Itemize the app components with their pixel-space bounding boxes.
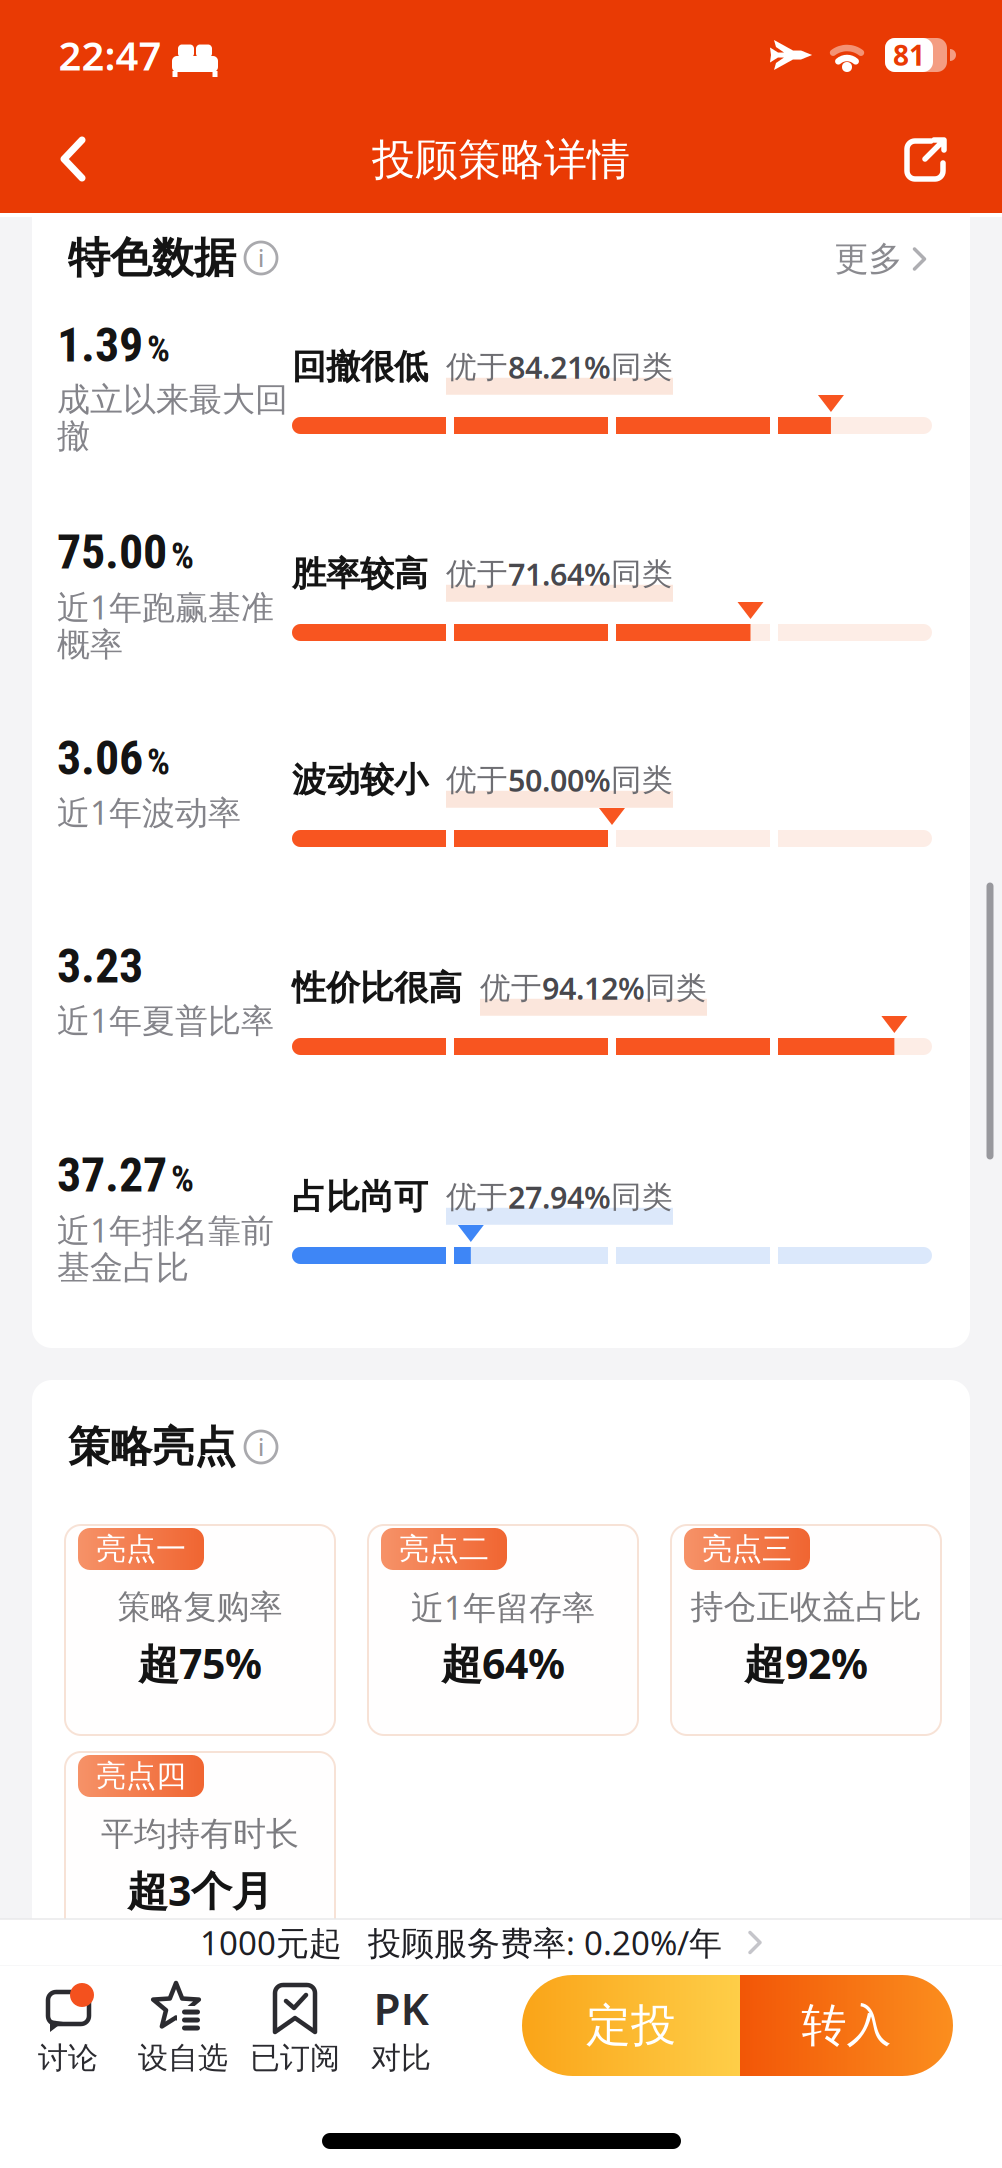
staticText: 71.64% <box>508 553 611 595</box>
staticText: 超3个月 <box>127 1862 273 1918</box>
staticText: 同类 <box>611 555 673 593</box>
staticText: 对比 <box>371 2039 431 2077</box>
staticText: 近1年排名靠前 基金占比 <box>57 1210 274 1286</box>
staticText: 更多 <box>834 238 902 280</box>
button[interactable]: 1000元起 <box>0 1919 1002 1966</box>
staticText: % <box>171 535 194 577</box>
staticText: % <box>147 328 170 370</box>
button[interactable]: PK <box>353 1982 449 2074</box>
staticText: 37.27 <box>57 1147 167 1203</box>
staticText: 近1年波动率 <box>57 792 241 832</box>
staticText: 策略亮点 <box>68 1420 236 1473</box>
staticText: 持仓正收益占比 <box>690 1586 921 1628</box>
staticText: 超64% <box>441 1635 565 1691</box>
staticText: i <box>258 1431 264 1463</box>
staticText: 22:47 <box>58 28 161 82</box>
staticText: 优于 <box>446 1178 508 1216</box>
button[interactable]: 已订阅 <box>247 1982 343 2074</box>
button[interactable]: 转入 <box>740 1975 953 2076</box>
staticText: PK <box>373 1978 428 2038</box>
staticText: 特色数据 <box>68 231 236 284</box>
staticText: 近1年留存率 <box>411 1584 595 1629</box>
button[interactable]: 更多 <box>834 238 927 280</box>
staticText: 优于 <box>446 555 508 593</box>
staticText: 策略复购率 <box>117 1586 282 1628</box>
staticText: 亮点四 <box>96 1757 186 1795</box>
staticText: 84.21% <box>508 346 611 388</box>
staticText: 81 <box>893 36 925 74</box>
staticText: 近1年跑赢基准 概率 <box>57 587 274 663</box>
staticText: 1.39 <box>57 317 143 373</box>
staticText: 3.23 <box>57 938 143 994</box>
staticText: 同类 <box>611 348 673 386</box>
staticText: 同类 <box>611 1178 673 1216</box>
staticText: 94.12% <box>542 967 645 1009</box>
staticText: 优于 <box>480 969 542 1007</box>
button[interactable]: 设自选 <box>135 1982 231 2074</box>
button[interactable]: Back <box>58 135 92 183</box>
staticText: 回撤很低 <box>292 346 428 388</box>
staticText: 超92% <box>744 1635 868 1691</box>
staticText: 近1年夏普比率 <box>57 1000 274 1040</box>
staticText: % <box>147 741 170 783</box>
staticText: 同类 <box>645 969 707 1007</box>
staticText: 成立以来最大回 撤 <box>57 381 288 455</box>
staticText: 占比尚可 <box>292 1176 428 1218</box>
staticText: % <box>171 1158 194 1200</box>
staticText: 平均持有时长 <box>101 1813 299 1855</box>
staticText: 已订阅 <box>250 2039 340 2077</box>
staticText: 定投 <box>586 1997 676 2054</box>
staticText: 亮点三 <box>702 1530 792 1568</box>
staticText: 投顾策略详情 <box>372 133 630 187</box>
staticText: 3.06 <box>57 730 143 786</box>
staticText: 亮点二 <box>399 1530 489 1568</box>
staticText: 投顾服务费率: 0.20%/年 <box>368 1920 722 1965</box>
staticText: 27.94% <box>508 1176 611 1218</box>
button[interactable]: 讨论 <box>20 1982 116 2074</box>
staticText: 波动较小 <box>292 759 428 801</box>
staticText: 转入 <box>801 1997 891 2054</box>
staticText: 同类 <box>611 761 673 799</box>
staticText: 亮点一 <box>96 1530 186 1568</box>
staticText: 性价比很高 <box>292 967 462 1009</box>
staticText: 胜率较高 <box>292 553 428 595</box>
staticText: 1000元起 <box>200 1920 342 1965</box>
staticText: 优于 <box>446 761 508 799</box>
staticText: 优于 <box>446 348 508 386</box>
staticText: 设自选 <box>138 2039 228 2077</box>
staticText: i <box>258 242 264 274</box>
button[interactable]: 定投 <box>522 1975 740 2076</box>
staticText: 50.00% <box>508 759 611 801</box>
staticText: 75.00 <box>57 524 167 580</box>
staticText: 超75% <box>138 1635 262 1691</box>
staticText: 讨论 <box>38 2039 98 2077</box>
button[interactable]: Share <box>902 134 950 186</box>
